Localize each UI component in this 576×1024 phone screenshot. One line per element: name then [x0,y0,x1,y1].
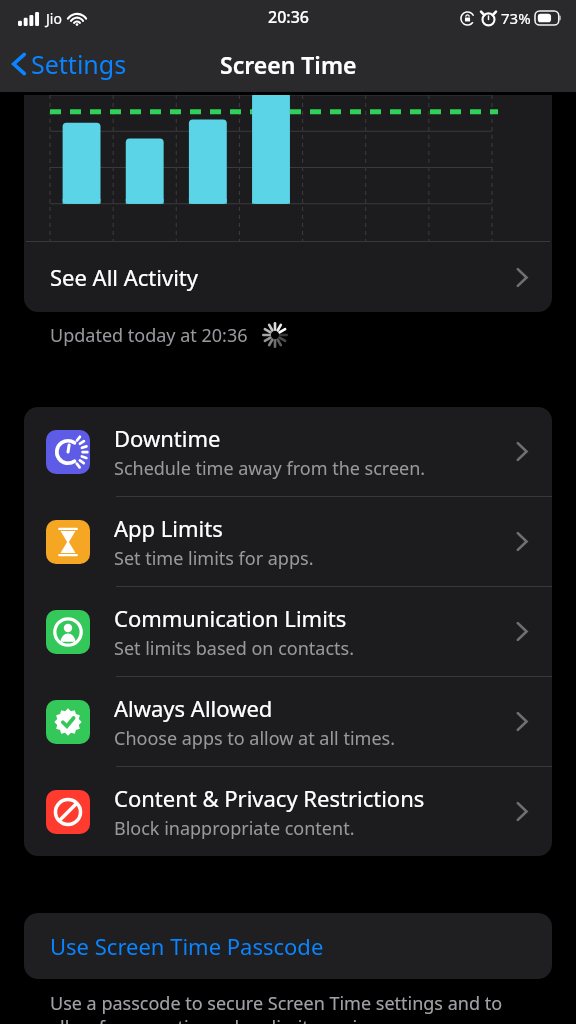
button[interactable]: Content & Privacy Restrictions [24,767,552,856]
button[interactable]: Always Allowed [24,677,552,766]
staticText: Set limits based on contacts. [114,636,354,661]
staticText: Settings [31,47,127,81]
staticText: Downtime [114,423,221,453]
staticText: Schedule time away from the screen. [114,456,426,481]
staticText: Use Screen Time Passcode [50,931,324,961]
button[interactable]: Use Screen Time Passcode [24,913,552,979]
staticText: Always Allowed [114,693,273,723]
staticText: Block inappropriate content. [114,816,355,841]
staticText: Content & Privacy Restrictions [114,783,425,813]
staticText: Updated today at 20:36 [50,323,248,348]
staticText: Choose apps to allow at all times. [114,726,395,751]
button[interactable]: Communication Limits [24,587,552,676]
button[interactable]: App Limits [24,497,552,586]
button[interactable]: See All Activity [24,242,552,312]
staticText: Set time limits for apps. [114,546,314,571]
button[interactable]: Downtime [24,407,552,496]
staticText: Screen Time [220,49,357,80]
button[interactable]: Settings [0,41,137,87]
staticText: Communication Limits [114,603,347,633]
staticText: Jio [46,9,62,28]
staticText: See All Activity [50,262,198,292]
staticText: 73% [501,8,531,28]
staticText: Use a passcode to secure Screen Time set… [50,991,532,1024]
staticText: App Limits [114,513,223,543]
staticText: 20:36 [268,6,309,28]
